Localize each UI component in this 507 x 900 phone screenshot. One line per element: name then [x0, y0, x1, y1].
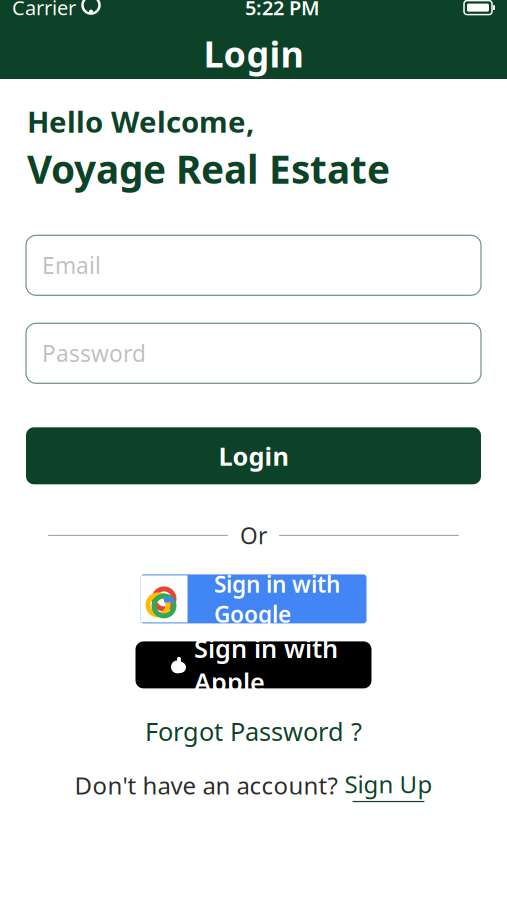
staticText: Login — [203, 30, 303, 77]
staticText: Or — [240, 520, 267, 550]
button[interactable]: Login — [26, 427, 481, 484]
staticText: Don't have an account? — [74, 769, 337, 801]
staticText: Sign in with Google — [214, 569, 340, 629]
staticText: Hello Welcome, — [27, 102, 254, 141]
staticText: Carrier — [12, 0, 76, 21]
button[interactable]: Forgot Password ? — [135, 708, 372, 754]
staticText: Forgot Password ? — [145, 714, 362, 748]
staticText: Sign in with Apple — [194, 631, 338, 699]
staticText — [76, 0, 81, 21]
staticText: Login — [218, 439, 288, 473]
button[interactable]: Sign Up — [344, 768, 432, 802]
staticText: Sign Up — [344, 768, 432, 800]
button[interactable]: Sign in with Google — [140, 574, 366, 623]
staticText: Email — [42, 250, 101, 280]
staticText: Voyage Real Estate — [27, 143, 390, 194]
staticText: 5:22 PM — [245, 0, 320, 21]
staticText: Password — [42, 338, 146, 368]
button[interactable]: Sign in with Apple — [135, 641, 371, 688]
